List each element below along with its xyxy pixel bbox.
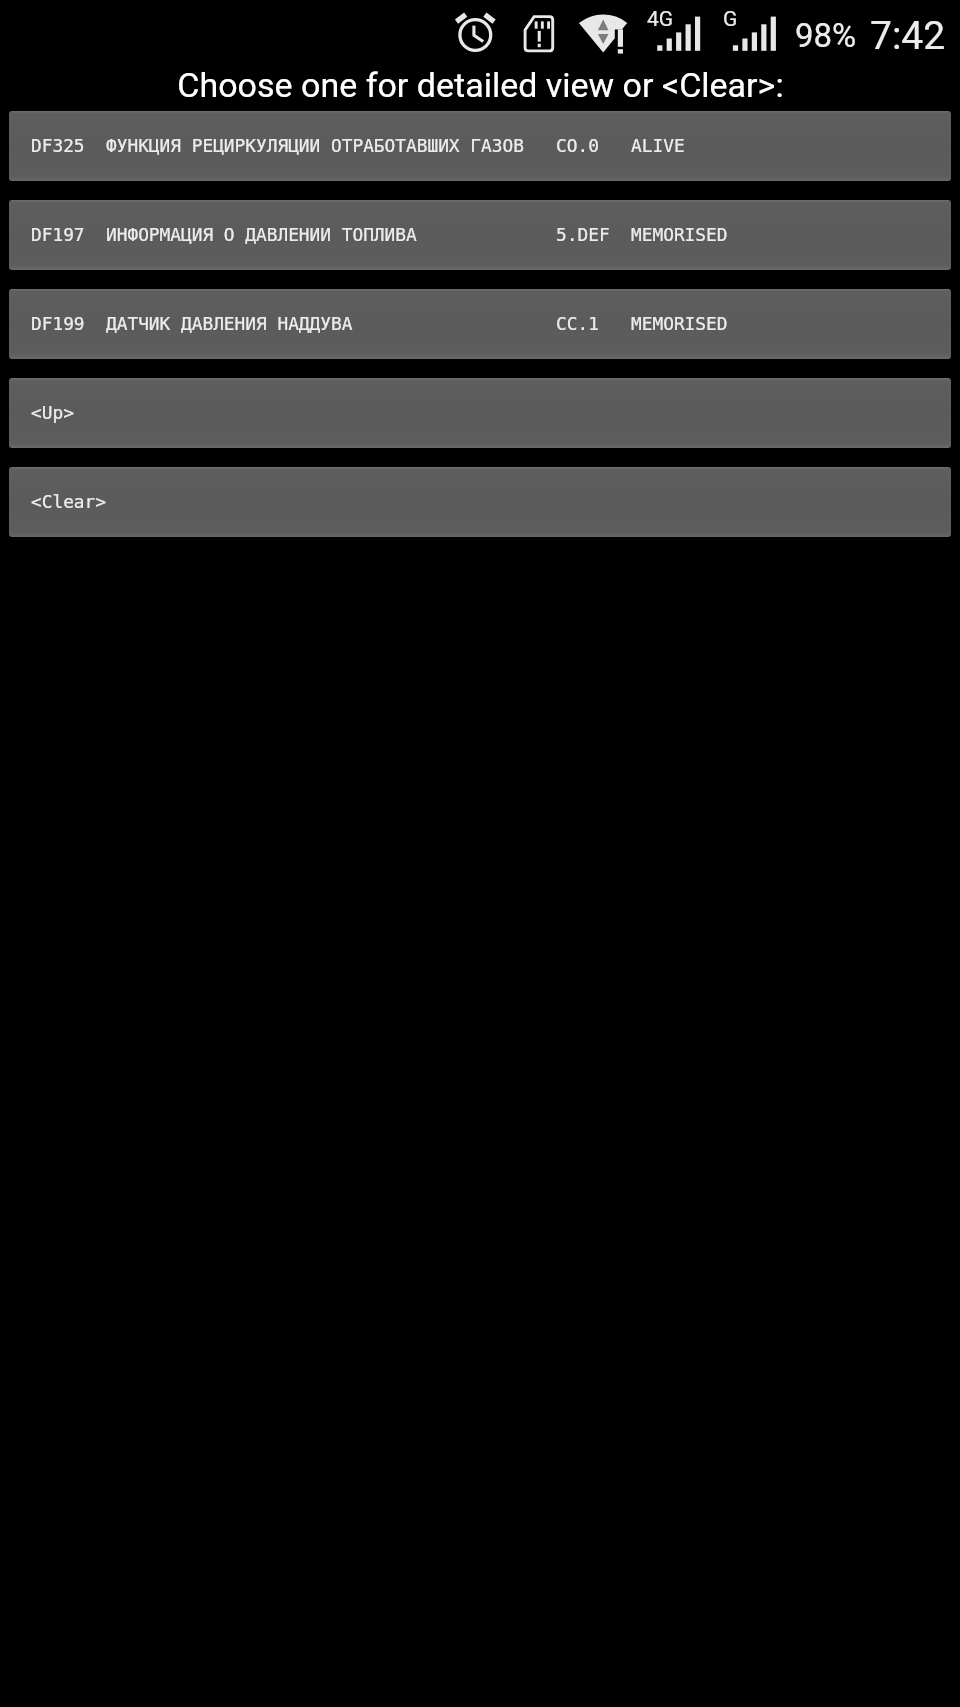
- staticText: Choose one for detailed view or <Clear>:: [177, 65, 784, 105]
- other: SIM card problem: [523, 14, 555, 54]
- other: Wi-Fi, no internet: [575, 10, 628, 57]
- staticText: <Up>: [31, 402, 74, 423]
- staticText: 4G: [647, 7, 674, 32]
- staticText: 7:42: [870, 13, 946, 59]
- staticText: G: [723, 7, 738, 32]
- staticText: DF199 ДАТЧИК ДАВЛЕНИЯ НАДДУВА CC.1 MEMOR…: [31, 313, 728, 334]
- staticText: 98%: [795, 16, 857, 55]
- other: Alarm set: [452, 11, 499, 57]
- staticText: DF197 ИНФОРМАЦИЯ О ДАВЛЕНИИ ТОПЛИВА 5.DE…: [31, 224, 728, 245]
- other: G signal full: [722, 0, 778, 57]
- button[interactable]: <Up>: [9, 378, 951, 448]
- button[interactable]: DF197 ИНФОРМАЦИЯ О ДАВЛЕНИИ ТОПЛИВА 5.DE…: [9, 200, 951, 270]
- button[interactable]: DF325 ФУНКЦИЯ РЕЦИРКУЛЯЦИИ ОТРАБОТАВШИХ …: [9, 111, 951, 181]
- button[interactable]: DF199 ДАТЧИК ДАВЛЕНИЯ НАДДУВА CC.1 MEMOR…: [9, 289, 951, 359]
- button[interactable]: <Clear>: [9, 467, 951, 537]
- other: 4G signal full: [646, 0, 702, 57]
- staticText: <Clear>: [31, 491, 107, 512]
- staticText: DF325 ФУНКЦИЯ РЕЦИРКУЛЯЦИИ ОТРАБОТАВШИХ …: [31, 135, 685, 156]
